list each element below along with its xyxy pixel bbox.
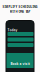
staticText: Today	[7, 28, 17, 32]
staticText: WITH ONE TAP	[9, 10, 30, 14]
staticText: SIMPLIFY SCHEDULING	[2, 5, 37, 9]
staticText: Book a visit	[10, 62, 29, 66]
